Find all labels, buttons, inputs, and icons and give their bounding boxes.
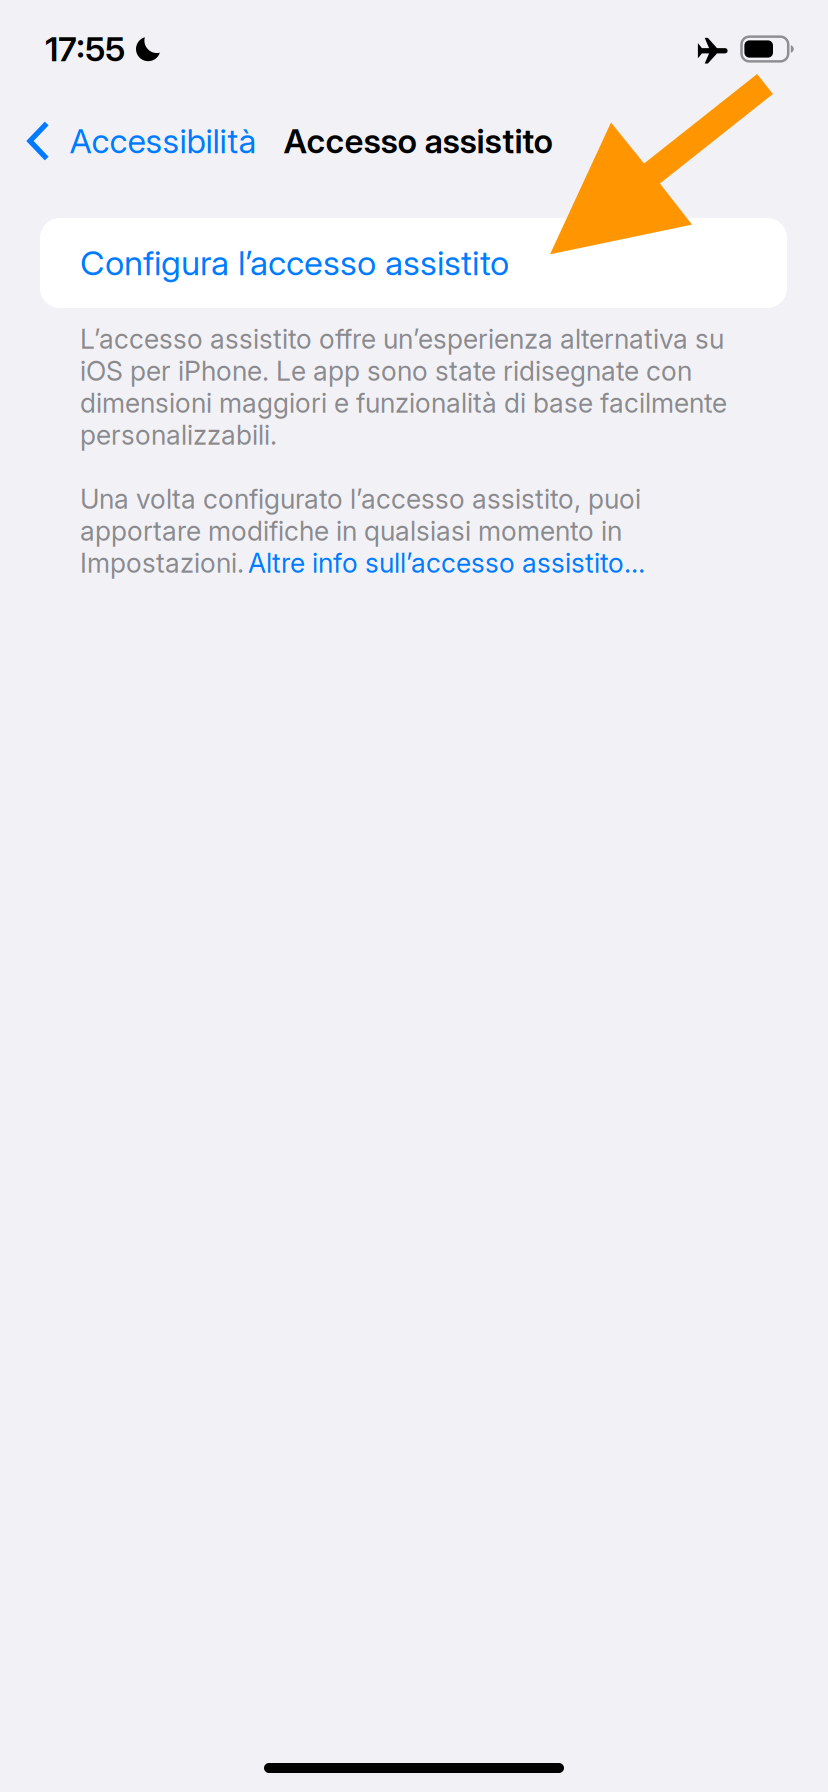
button[interactable]: Configura l’accesso assistito <box>40 218 787 308</box>
button[interactable]: Altre info sull’accesso assistito… <box>244 547 645 579</box>
staticText: Una volta configurato l’accesso assistit… <box>80 483 641 515</box>
staticText: L’accesso assistito offre un’esperienza … <box>80 323 724 355</box>
staticText: Altre info sull’accesso assistito… <box>248 547 645 579</box>
staticText: dimensioni maggiori e funzionalità di ba… <box>80 387 727 419</box>
staticText: Configura l’accesso assistito <box>80 242 509 283</box>
staticText: iOS per iPhone. Le app sono state ridise… <box>80 355 692 387</box>
staticText: Accesso assistito <box>283 121 552 161</box>
staticText: 17:55 <box>45 28 125 69</box>
staticText: apportare modifiche in qualsiasi momento… <box>80 515 622 547</box>
button[interactable]: Accessibilità <box>0 98 283 184</box>
staticText: Accessibilità <box>69 121 256 161</box>
staticText: personalizzabili. <box>80 419 277 451</box>
staticText: Impostazioni. <box>80 547 244 579</box>
